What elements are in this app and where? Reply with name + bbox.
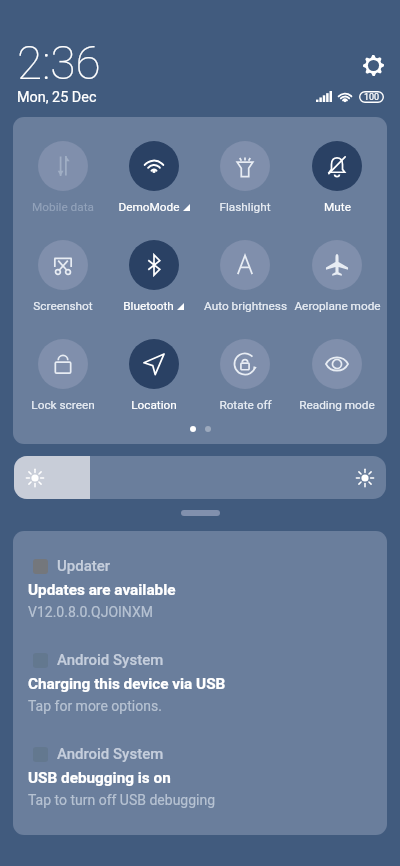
button[interactable]: Mute xyxy=(291,117,383,216)
button[interactable]: Aeroplane mode xyxy=(291,216,383,315)
button[interactable]: Android System xyxy=(13,745,387,808)
staticText: Reading mode xyxy=(299,398,375,412)
staticText: Location xyxy=(131,398,177,412)
staticText: Mobile data xyxy=(32,200,94,214)
button[interactable]: Flashlight xyxy=(199,117,291,216)
button[interactable]: Location xyxy=(108,315,199,414)
button[interactable]: Android System xyxy=(13,651,387,714)
button[interactable]: Auto brightness xyxy=(199,216,291,315)
staticText: USB debugging is on xyxy=(28,769,171,787)
button[interactable]: Mobile data xyxy=(17,117,108,216)
button[interactable]: Settings xyxy=(363,55,384,76)
button[interactable]: Lock screen xyxy=(17,315,108,414)
button[interactable]: Screenshot xyxy=(17,216,108,315)
staticText: Tap to turn off USB debugging xyxy=(28,792,216,808)
staticText: Updates are available xyxy=(28,581,176,599)
staticText: Android System xyxy=(57,745,164,763)
staticText: V12.0.8.0.QJOINXM xyxy=(28,604,153,620)
staticText: Bluetooth xyxy=(123,299,174,313)
staticText: 100 xyxy=(364,92,380,103)
staticText: Rotate off xyxy=(219,398,272,412)
staticText: Auto brightness xyxy=(204,299,287,313)
staticText: Flashlight xyxy=(219,200,271,214)
staticText: 2:36 xyxy=(17,36,101,90)
staticText: DemoMode xyxy=(118,200,180,214)
button[interactable]: Rotate off xyxy=(199,315,291,414)
button[interactable]: Updater xyxy=(13,557,387,620)
staticText: Updater xyxy=(57,557,111,575)
button[interactable]: Brightness xyxy=(14,456,386,499)
staticText: Tap for more options. xyxy=(28,698,162,714)
staticText: Lock screen xyxy=(31,398,95,412)
staticText: Charging this device via USB xyxy=(28,675,226,693)
staticText: Screenshot xyxy=(33,299,93,313)
button[interactable]: Bluetooth xyxy=(108,216,199,315)
staticText: Mute xyxy=(324,200,351,214)
staticText: Android System xyxy=(57,651,164,669)
button[interactable]: Reading mode xyxy=(291,315,383,414)
staticText: Mon, 25 Dec xyxy=(17,89,97,106)
staticText: Aeroplane mode xyxy=(294,299,381,313)
button[interactable]: DemoMode xyxy=(108,117,199,216)
